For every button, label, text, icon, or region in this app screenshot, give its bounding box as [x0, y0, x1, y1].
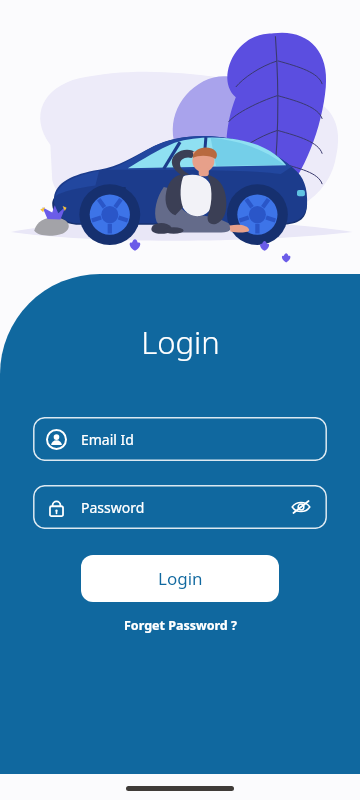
- button[interactable]: Forget Password ?: [118, 614, 243, 637]
- staticText: Password: [81, 498, 145, 517]
- staticText: Login: [141, 321, 220, 363]
- staticText: Email Id: [81, 430, 134, 449]
- button[interactable]: Password: [33, 485, 327, 529]
- button[interactable]: Show password: [288, 494, 314, 520]
- staticText: Login: [158, 567, 203, 590]
- button[interactable]: Login: [81, 555, 279, 602]
- staticText: Forget Password ?: [124, 617, 237, 634]
- button[interactable]: Email Id: [33, 417, 327, 461]
